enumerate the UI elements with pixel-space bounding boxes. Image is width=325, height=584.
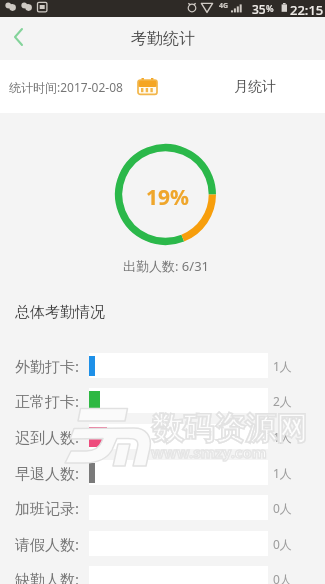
staticText: 加班记录: <box>15 498 80 518</box>
button[interactable]: 早退人数: <box>0 460 325 485</box>
staticText: 4G <box>219 1 229 11</box>
button[interactable]: 统计时间:2017-02-08 <box>9 78 158 95</box>
staticText: 缺勤人数: <box>15 569 80 584</box>
staticText: 请假人数: <box>15 534 80 554</box>
staticText: 22:15 <box>290 1 324 18</box>
staticText: 1人 <box>273 358 292 374</box>
staticText: 考勤统计 <box>131 29 195 49</box>
button[interactable]: 迟到人数: <box>0 424 325 449</box>
staticText: 出勤人数: 6/31 <box>123 257 210 275</box>
button[interactable]: 月统计 <box>234 78 276 96</box>
button[interactable]: 请假人数: <box>0 531 325 556</box>
staticText: 数码资源网 <box>152 409 307 448</box>
staticText: 1人 <box>273 465 292 481</box>
staticText: 0人 <box>273 536 292 552</box>
staticText: 数码资源网 <box>152 409 307 448</box>
staticText: 19% <box>146 183 189 212</box>
staticText: 0人 <box>273 500 292 516</box>
staticText: 月统计 <box>234 78 276 96</box>
staticText: 早退人数: <box>15 463 80 483</box>
staticText: www.smzy.com <box>151 442 267 462</box>
button[interactable]: 加班记录: <box>0 495 325 520</box>
staticText: 2人 <box>273 393 292 409</box>
staticText: 35 <box>252 1 266 17</box>
staticText: 0人 <box>273 571 292 584</box>
button[interactable]: 外勤打卡: <box>0 353 325 378</box>
staticText: 正常打卡: <box>15 391 80 411</box>
staticText: 统计时间:2017-02-08 <box>9 79 123 95</box>
button[interactable]: 正常打卡: <box>0 388 325 413</box>
staticText: 外勤打卡: <box>15 356 80 376</box>
button[interactable]: 缺勤人数: <box>0 566 325 584</box>
staticText: 1人 <box>273 429 292 445</box>
staticText: www.smzy.com <box>151 442 267 462</box>
staticText: 总体考勤情况 <box>15 303 105 322</box>
staticText: 迟到人数: <box>15 427 80 447</box>
button[interactable]: Back <box>2 21 34 53</box>
staticText: % <box>266 2 274 14</box>
